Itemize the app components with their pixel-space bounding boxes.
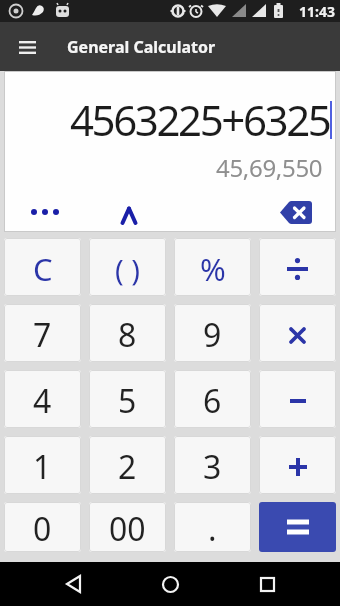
staticText: 11:43 (299, 2, 335, 21)
button[interactable]: 00 (89, 502, 166, 552)
button[interactable]: 8 (89, 304, 166, 362)
staticText: 3 (203, 445, 222, 489)
staticText: 8 (118, 313, 137, 357)
button[interactable] (259, 370, 336, 428)
staticText: % (200, 248, 226, 290)
button[interactable]: C (4, 238, 81, 296)
button[interactable] (24, 197, 66, 227)
button[interactable]: 6 (174, 370, 251, 428)
button[interactable]: 9 (174, 304, 251, 362)
button[interactable] (111, 197, 147, 227)
staticText: 4563225+6325 (70, 91, 330, 148)
button[interactable] (259, 238, 336, 296)
staticText: 7 (33, 313, 52, 357)
button[interactable]: 2 (89, 436, 166, 494)
button[interactable]: 0 (4, 502, 81, 552)
button[interactable]: 7 (4, 304, 81, 362)
button[interactable] (10, 30, 44, 64)
staticText: 4 (33, 379, 52, 423)
button[interactable]: 5 (89, 370, 166, 428)
staticText: C (33, 248, 53, 290)
button[interactable]: ( ) (89, 238, 166, 296)
button[interactable]: 1 (4, 436, 81, 494)
button[interactable] (272, 196, 320, 228)
staticText: 0 (33, 507, 52, 551)
button[interactable]: 4 (4, 370, 81, 428)
button[interactable] (259, 436, 336, 494)
staticText: 1 (33, 445, 52, 489)
button[interactable] (259, 502, 336, 552)
button[interactable] (259, 304, 336, 362)
button[interactable] (138, 562, 202, 606)
staticText: 6 (203, 379, 222, 423)
button[interactable]: . (174, 502, 251, 552)
staticText: 00 (109, 507, 146, 551)
staticText: 9 (203, 313, 222, 357)
staticText: . (208, 507, 217, 551)
staticText: 45,69,550 (216, 151, 323, 184)
staticText: General Calculator (67, 36, 216, 58)
button[interactable] (41, 562, 105, 606)
staticText: ( ) (115, 250, 140, 289)
staticText: 2 (118, 445, 137, 489)
button[interactable]: 3 (174, 436, 251, 494)
button[interactable]: % (174, 238, 251, 296)
button[interactable] (235, 562, 299, 606)
staticText: 5 (118, 379, 137, 423)
